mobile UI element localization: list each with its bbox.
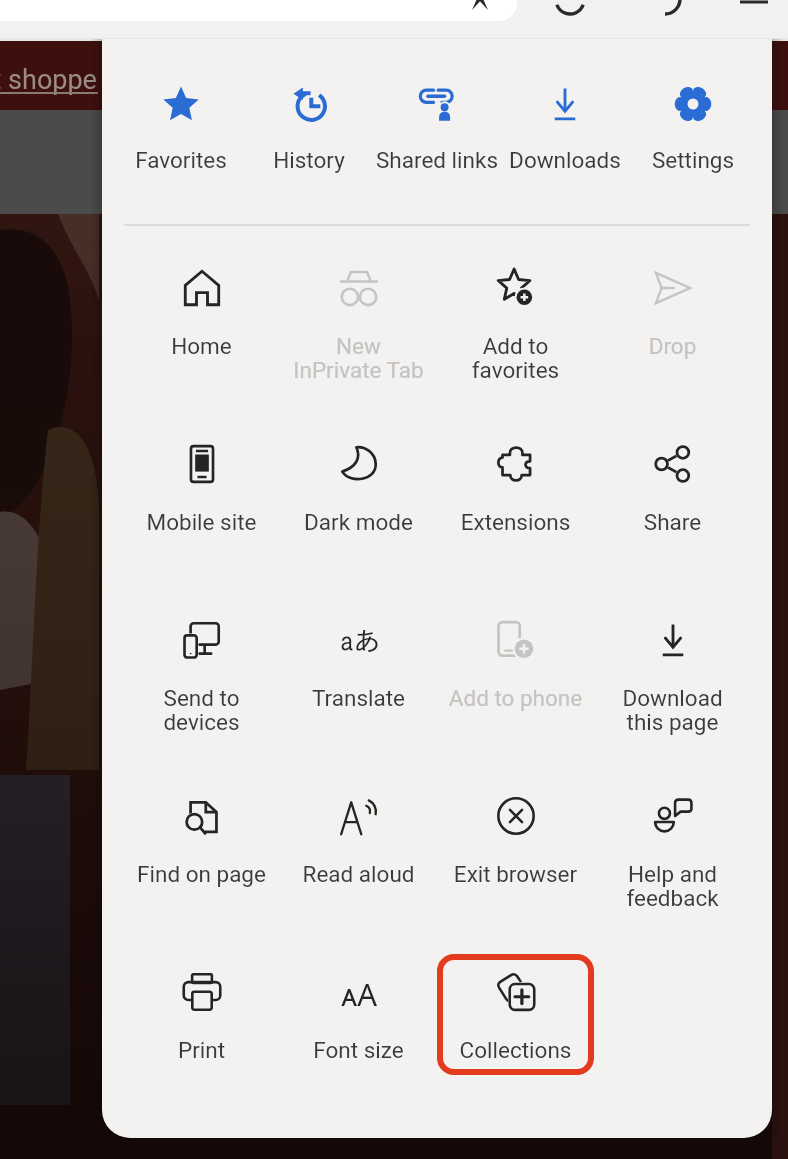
- staticText: Print: [123, 1037, 280, 1063]
- staticText: Mobile site: [123, 509, 280, 535]
- staticText: Favorites: [117, 147, 245, 173]
- staticText: Font size: [280, 1037, 437, 1063]
- button[interactable]: Dark mode: [280, 426, 437, 581]
- staticText: aあ: [340, 627, 378, 654]
- button[interactable]: Add to favorites: [437, 250, 594, 405]
- button[interactable]: Print: [123, 954, 280, 1109]
- button[interactable]: ᴀA: [280, 954, 437, 1109]
- staticText: New InPrivate Tab: [280, 333, 437, 383]
- button[interactable]: Share: [594, 426, 751, 581]
- staticText: Share: [594, 509, 751, 535]
- button[interactable]: Home: [123, 250, 280, 405]
- button[interactable]: aあ: [280, 602, 437, 757]
- staticText: Settings: [629, 147, 757, 173]
- button[interactable]: Send to devices: [123, 602, 280, 757]
- button[interactable]: Collections: [437, 954, 594, 1109]
- staticText: Shared links: [373, 147, 501, 173]
- staticText: Read aloud: [280, 861, 437, 887]
- staticText: Send to devices: [123, 685, 280, 735]
- staticText: Exit browser: [437, 861, 594, 887]
- staticText: ᴀA: [341, 973, 378, 1011]
- button[interactable]: Add to phone: [437, 602, 594, 757]
- staticText: Add to favorites: [437, 333, 594, 383]
- staticText: Translate: [280, 685, 437, 711]
- staticText: Downloads: [501, 147, 629, 173]
- button[interactable]: Mobile site: [123, 426, 280, 581]
- staticText: Download this page: [594, 685, 751, 735]
- button[interactable]: Shared links: [373, 85, 501, 173]
- staticText: Collections: [437, 1037, 594, 1063]
- button[interactable]: Download this page: [594, 602, 751, 757]
- button[interactable]: Settings: [629, 85, 757, 173]
- button[interactable]: Favorites: [117, 85, 245, 173]
- button[interactable]: Exit browser: [437, 778, 594, 933]
- button[interactable]: Drop: [594, 250, 751, 405]
- button[interactable]: Find on page: [123, 778, 280, 933]
- button[interactable]: New InPrivate Tab: [280, 250, 437, 405]
- staticText: Help and feedback: [594, 861, 751, 911]
- staticText: Add to phone: [437, 685, 594, 711]
- button[interactable]: Extensions: [437, 426, 594, 581]
- staticText: Extensions: [437, 509, 594, 535]
- button[interactable]: Read aloud: [280, 778, 437, 933]
- staticText: Drop: [594, 333, 751, 359]
- button[interactable]: Downloads: [501, 85, 629, 173]
- staticText: Dark mode: [280, 509, 437, 535]
- button[interactable]: History: [245, 85, 373, 173]
- staticText: History: [245, 147, 373, 173]
- button[interactable]: Help and feedback: [594, 778, 751, 933]
- staticText: Home: [123, 333, 280, 359]
- staticText: lt shoppe: [0, 64, 97, 96]
- staticText: Find on page: [123, 861, 280, 887]
